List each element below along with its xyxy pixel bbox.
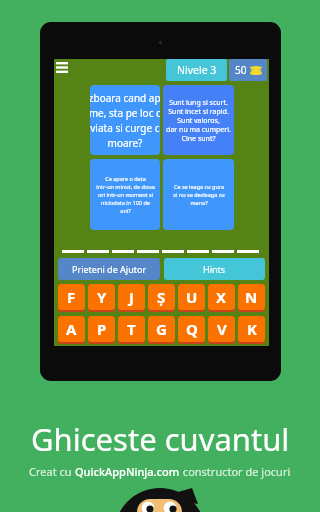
staticText: U xyxy=(186,287,198,307)
button[interactable]: Hints xyxy=(164,258,265,280)
staticText: Hints xyxy=(203,263,226,275)
button[interactable]: Q xyxy=(178,316,205,344)
staticText: K xyxy=(247,319,257,339)
staticText: P xyxy=(97,319,107,339)
staticText: Ghiceste cuvantul xyxy=(31,418,290,460)
button[interactable]: G xyxy=(148,316,175,344)
staticText: Prieteni de Ajutor xyxy=(72,263,147,275)
staticText: QuickAppNinja.com xyxy=(75,464,180,479)
button[interactable]: J xyxy=(118,284,145,312)
staticText: V xyxy=(217,319,227,339)
staticText: X xyxy=(216,287,227,307)
button[interactable]: Ce se leaga cu gura si nu se dezleaga cu… xyxy=(163,159,234,230)
staticText: Ce apare o data intr-un minut, de doua o… xyxy=(96,175,155,215)
button[interactable]: V xyxy=(208,316,235,344)
staticText: Nivele 3 xyxy=(177,63,217,77)
button[interactable]: A xyxy=(58,316,85,344)
staticText: T xyxy=(127,319,136,339)
button[interactable]: U xyxy=(178,284,205,312)
button[interactable]: Y xyxy=(88,284,115,312)
staticText: Ce zboara cand apare n lume, sta pe loc … xyxy=(90,91,160,150)
staticText: Q xyxy=(186,319,198,339)
button[interactable]: P xyxy=(88,316,115,344)
button[interactable]: Prieteni de Ajutor xyxy=(58,258,160,280)
staticText: N xyxy=(245,287,258,307)
staticText: Sunt lung si scurt. Sunt incet si rapid.… xyxy=(166,98,231,143)
button[interactable]: Nivele 3 xyxy=(166,59,227,81)
button[interactable]: Ș xyxy=(148,284,175,312)
button[interactable]: 50 xyxy=(229,59,267,81)
staticText: Y xyxy=(97,287,107,307)
staticText: G xyxy=(156,319,167,339)
button[interactable]: X xyxy=(208,284,235,312)
button[interactable]: F xyxy=(58,284,85,312)
staticText: A xyxy=(66,319,77,339)
button[interactable]: N xyxy=(238,284,265,312)
staticText: J xyxy=(129,287,134,307)
staticText: F xyxy=(67,287,76,307)
button[interactable]: Ce apare o data intr-un minut, de doua o… xyxy=(90,159,160,230)
button[interactable]: Ce zboara cand apare n lume, sta pe loc … xyxy=(90,85,160,155)
staticText: Ce se leaga cu gura si nu se dezleaga cu… xyxy=(173,183,225,207)
button[interactable]: T xyxy=(118,316,145,344)
button[interactable]: Menu xyxy=(54,59,72,77)
button[interactable]: K xyxy=(238,316,265,344)
staticText: Creat cu xyxy=(29,464,75,479)
staticText: constructor de jocuri xyxy=(180,464,291,479)
staticText: 50 xyxy=(235,63,247,77)
button[interactable]: Sunt lung si scurt. Sunt incet si rapid.… xyxy=(163,85,234,155)
staticText: Ș xyxy=(157,287,166,307)
